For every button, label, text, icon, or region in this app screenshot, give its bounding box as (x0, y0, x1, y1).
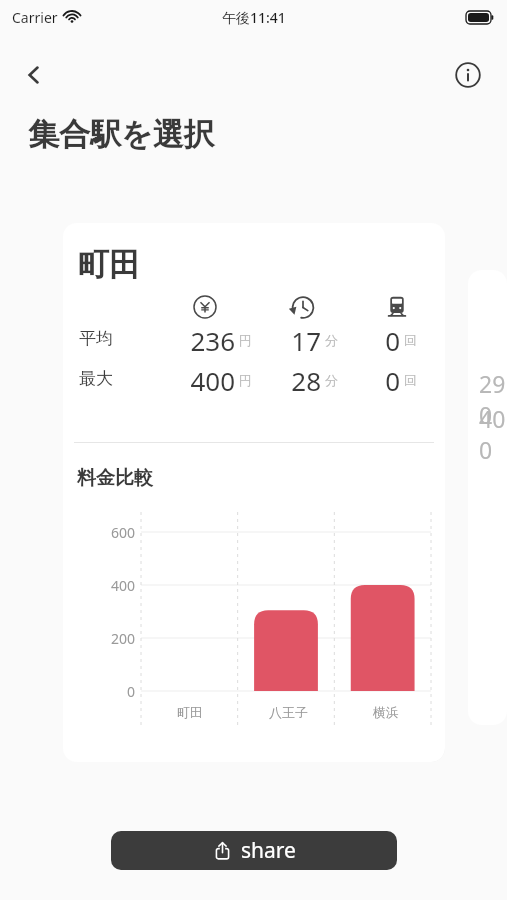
staticText: 400 (73, 576, 135, 595)
staticText: 回 (404, 332, 417, 348)
staticText: 17 (259, 323, 321, 358)
staticText: 回 (404, 372, 417, 388)
staticText: share (241, 836, 296, 865)
button[interactable]: 290 (468, 270, 507, 725)
button[interactable]: Back (12, 53, 56, 97)
staticText: 28 (259, 363, 321, 398)
button[interactable]: share (111, 831, 397, 870)
staticText: 分 (325, 332, 338, 348)
staticText: Carrier (12, 8, 58, 27)
staticText: 料金比較 (77, 466, 153, 490)
staticText: 0 (348, 363, 400, 398)
staticText: 0 (348, 323, 400, 358)
staticText: 200 (73, 629, 135, 648)
staticText: 町田 (177, 704, 203, 720)
button[interactable]: 町田 (63, 223, 445, 762)
staticText: 290 (479, 368, 507, 430)
staticText: 0 (73, 682, 135, 701)
staticText: 円 (239, 372, 252, 388)
staticText: 600 (73, 523, 135, 542)
staticText: 町田 (78, 245, 140, 284)
staticText: 平均 (79, 328, 113, 349)
staticText: 円 (239, 332, 252, 348)
staticText: 八王子 (269, 704, 308, 720)
button[interactable]: Info (447, 54, 489, 96)
staticText: 横浜 (373, 704, 399, 720)
staticText: 400 (159, 363, 235, 398)
staticText: 午後11:41 (222, 8, 286, 27)
staticText: 最大 (79, 368, 113, 389)
staticText: 236 (159, 323, 235, 358)
staticText: 集合駅を選択 (28, 115, 215, 154)
staticText: 分 (325, 372, 338, 388)
staticText: 400 (479, 403, 507, 465)
